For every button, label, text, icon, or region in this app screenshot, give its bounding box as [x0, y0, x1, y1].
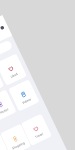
button[interactable]	[21, 113, 52, 146]
button[interactable]	[0, 124, 31, 150]
button[interactable]: Search	[0, 39, 13, 78]
staticText: Shopping	[11, 141, 25, 150]
staticText: Photos	[0, 107, 9, 115]
button[interactable]: Profile	[0, 22, 8, 34]
button[interactable]	[0, 53, 27, 86]
button[interactable]	[0, 63, 4, 96]
staticText: Liked	[10, 72, 18, 79]
staticText: Videos	[22, 97, 32, 105]
staticText: Travel	[34, 132, 44, 139]
button[interactable]	[0, 89, 17, 122]
button[interactable]	[8, 79, 40, 112]
